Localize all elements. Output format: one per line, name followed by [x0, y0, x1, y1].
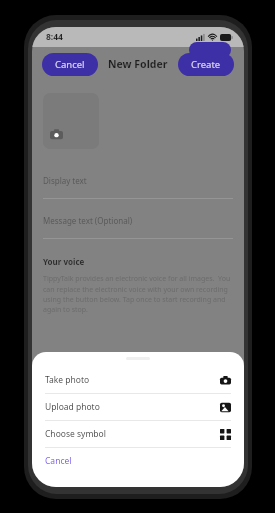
staticText: Take photo [45, 374, 90, 386]
staticText: 8:44 [46, 31, 63, 43]
staticText: Display text [43, 175, 87, 186]
staticText: Cancel [55, 58, 85, 71]
staticText: Cancel [45, 455, 72, 467]
staticText: Message text (Optional) [43, 215, 133, 226]
staticText: New Folder [108, 57, 168, 71]
button[interactable]: Add photo [43, 93, 99, 149]
staticText: Your voice [43, 256, 85, 267]
button[interactable]: Cancel [42, 53, 98, 76]
button[interactable]: Message text (Optional) [43, 215, 233, 239]
staticText: Choose symbol [45, 428, 106, 440]
staticText: Create [191, 58, 221, 71]
staticText: TippyTalk provides an electronic voice f… [43, 274, 233, 314]
button[interactable]: Upload photo [32, 394, 244, 420]
button[interactable]: Take photo [32, 367, 244, 393]
button[interactable]: Create [178, 53, 234, 76]
staticText: Upload photo [45, 401, 100, 413]
button[interactable]: Choose symbol [32, 421, 244, 447]
button[interactable]: Display text [43, 175, 233, 199]
button[interactable]: Cancel [32, 448, 244, 474]
